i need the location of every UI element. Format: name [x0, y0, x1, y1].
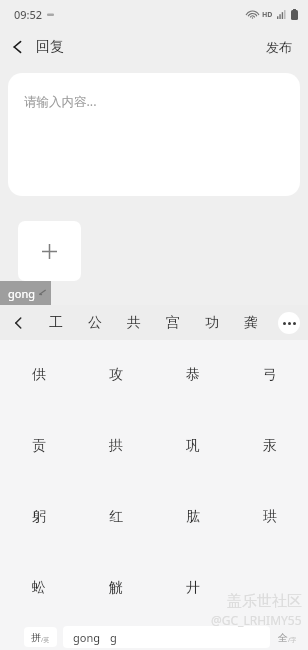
button[interactable]: 公: [75, 305, 114, 340]
staticText: 宫: [166, 314, 180, 332]
staticText: 全: [278, 631, 288, 644]
button[interactable]: 共: [114, 305, 153, 340]
staticText: 功: [205, 314, 219, 332]
staticText: 龚: [244, 314, 258, 332]
button[interactable]: 攻: [77, 340, 154, 410]
staticText: g: [110, 630, 117, 645]
button[interactable]: 汞: [231, 410, 308, 481]
button[interactable]: 珙: [231, 481, 308, 552]
button[interactable]: 功: [192, 305, 231, 340]
button[interactable]: Add photo: [18, 221, 81, 281]
staticText: 请输入内容...: [24, 93, 97, 110]
button[interactable]: 肱: [154, 481, 231, 552]
button[interactable]: 觥: [77, 552, 154, 623]
staticText: 盖乐世社区: [227, 592, 302, 611]
button[interactable]: gong: [0, 281, 51, 305]
staticText: 发布: [266, 39, 292, 55]
staticText: HD: [262, 10, 273, 20]
button[interactable]: 躬: [0, 481, 77, 552]
button[interactable]: 贡: [0, 410, 77, 481]
staticText: 拱: [109, 437, 123, 455]
staticText: 供: [32, 366, 46, 384]
button[interactable]: 拱: [77, 410, 154, 481]
staticText: 红: [109, 508, 123, 526]
button[interactable]: 巩: [154, 410, 231, 481]
button[interactable]: 拼: [24, 627, 57, 647]
button[interactable]: More candidates: [270, 305, 308, 340]
staticText: 躬: [32, 508, 46, 526]
other: Back: [12, 39, 23, 55]
staticText: gong: [73, 630, 100, 645]
staticText: 公: [88, 314, 102, 332]
staticText: 09:52: [14, 7, 43, 22]
staticText: /英: [41, 636, 50, 644]
staticText: 觥: [109, 579, 123, 597]
staticText: 肱: [186, 508, 200, 526]
button[interactable]: 弓: [231, 340, 308, 410]
button[interactable]: 廾: [154, 552, 231, 623]
staticText: /字: [288, 636, 297, 644]
staticText: 恭: [186, 366, 200, 384]
staticText: 工: [49, 314, 63, 332]
staticText: 汞: [263, 437, 277, 455]
button[interactable]: 供: [0, 340, 77, 410]
button[interactable]: Back: [0, 34, 74, 60]
staticText: 攻: [109, 366, 123, 384]
staticText: 廾: [186, 579, 200, 597]
staticText: 珙: [263, 508, 277, 526]
staticText: 共: [127, 314, 141, 332]
staticText: 回复: [36, 38, 64, 56]
button[interactable]: 工: [36, 305, 75, 340]
button[interactable]: 龚: [231, 305, 270, 340]
button[interactable]: 发布: [250, 33, 308, 61]
button[interactable]: 红: [77, 481, 154, 552]
staticText: @GC_LRHIMY55: [211, 612, 302, 628]
button[interactable]: Back: [0, 305, 36, 340]
staticText: 弓: [263, 366, 277, 384]
staticText: 贡: [32, 437, 46, 455]
button[interactable]: 恭: [154, 340, 231, 410]
button[interactable]: [231, 552, 308, 623]
button[interactable]: 蚣: [0, 552, 77, 623]
staticText: 拼: [31, 631, 41, 644]
staticText: gong: [8, 286, 35, 301]
button[interactable]: 宫: [153, 305, 192, 340]
staticText: 蚣: [32, 579, 46, 597]
button[interactable]: 全: [270, 627, 304, 647]
button[interactable]: gong: [63, 626, 270, 648]
button[interactable]: 请输入内容...: [8, 73, 300, 196]
staticText: 巩: [186, 437, 200, 455]
